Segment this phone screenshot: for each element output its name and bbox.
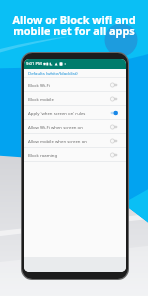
other: Toggle [110, 96, 118, 102]
staticText: Block roaming [28, 152, 110, 158]
button[interactable]: Block mobile [24, 92, 126, 105]
staticText: Block mobile [28, 96, 110, 102]
staticText: Allow mobile when screen on [28, 138, 110, 144]
staticText: 9:01 PM [26, 61, 42, 67]
other: Toggle [110, 124, 118, 130]
staticText: Apply 'when screen on' rules [28, 110, 110, 116]
button[interactable]: Apply 'when screen on' rules [24, 106, 126, 119]
other: Toggle [110, 138, 118, 144]
staticText: Defaults (white/blacklist) [28, 70, 78, 76]
button[interactable]: Allow Wi-Fi when screen on [24, 120, 126, 133]
staticText: Allow Wi-Fi when screen on [28, 124, 110, 130]
button[interactable]: Allow mobile when screen on [24, 134, 126, 147]
other: Toggle [110, 110, 118, 116]
button[interactable]: Block Wi-Fi [24, 78, 126, 91]
staticText: Allow or Block wifi and mobile net for a… [0, 12, 148, 38]
other: Toggle [110, 152, 118, 158]
button[interactable]: Block roaming [24, 148, 126, 161]
staticText: Block Wi-Fi [28, 82, 110, 88]
button[interactable]: Defaults (white/blacklist) [24, 69, 126, 77]
other: Toggle [110, 82, 118, 88]
